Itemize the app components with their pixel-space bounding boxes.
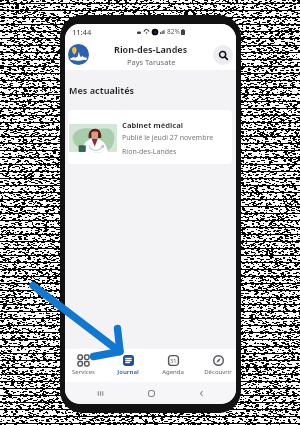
staticText: Pays Tarusate xyxy=(127,57,176,67)
staticText: Agenda xyxy=(162,368,184,376)
button[interactable]: Logo commune xyxy=(68,44,89,65)
staticText: Découvrir xyxy=(204,368,232,376)
button[interactable]: Rechercher xyxy=(213,45,233,65)
button[interactable]: Back xyxy=(195,387,207,399)
button[interactable]: Services xyxy=(68,349,98,382)
staticText: Rion-des-Landes xyxy=(122,147,177,157)
button[interactable]: Recents xyxy=(94,387,106,399)
button[interactable]: Home xyxy=(145,387,157,399)
staticText: Journal xyxy=(117,368,139,376)
staticText: Services xyxy=(72,368,95,376)
button[interactable]: Découvrir xyxy=(203,349,233,382)
staticText: 11:44 xyxy=(72,27,92,37)
button[interactable]: 31 xyxy=(158,349,188,382)
staticText: Publié le jeudi 27 novembre xyxy=(122,133,214,143)
staticText: Rion-des-Landes xyxy=(114,43,188,55)
staticText: 31 xyxy=(170,357,177,364)
button[interactable]: Journal xyxy=(113,349,143,382)
staticText: Mes actualités xyxy=(69,84,135,96)
staticText: 82% xyxy=(167,27,180,36)
button[interactable]: Cabinet médical xyxy=(68,110,232,164)
staticText: Cabinet médical xyxy=(122,120,183,130)
